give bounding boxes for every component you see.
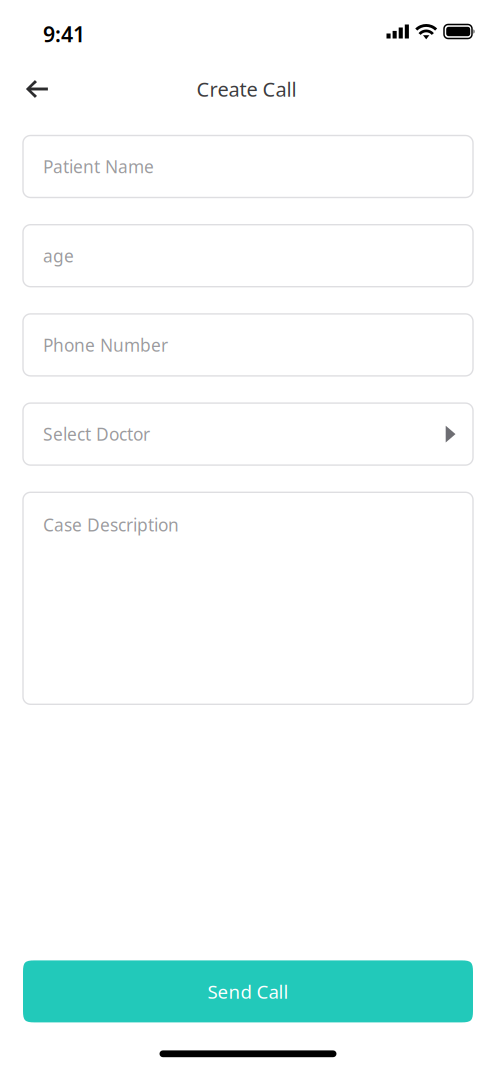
button[interactable]: age	[23, 225, 473, 287]
staticText: Select Doctor	[43, 423, 150, 446]
button[interactable]: Patient Name	[23, 135, 473, 197]
button[interactable]: Select Doctor	[23, 403, 473, 465]
staticText: Phone Number	[43, 333, 168, 356]
button[interactable]: Send Call	[23, 960, 473, 1022]
button[interactable]: Case Description	[23, 492, 473, 704]
staticText: 9:41	[43, 20, 85, 48]
staticText: Case Description	[43, 513, 179, 536]
staticText: Send Call	[207, 979, 288, 1004]
button[interactable]: Phone Number	[23, 314, 473, 376]
staticText: Patient Name	[43, 155, 154, 178]
button[interactable]: Back	[14, 67, 60, 111]
staticText: age	[43, 244, 74, 267]
staticText: Create Call	[196, 76, 296, 102]
